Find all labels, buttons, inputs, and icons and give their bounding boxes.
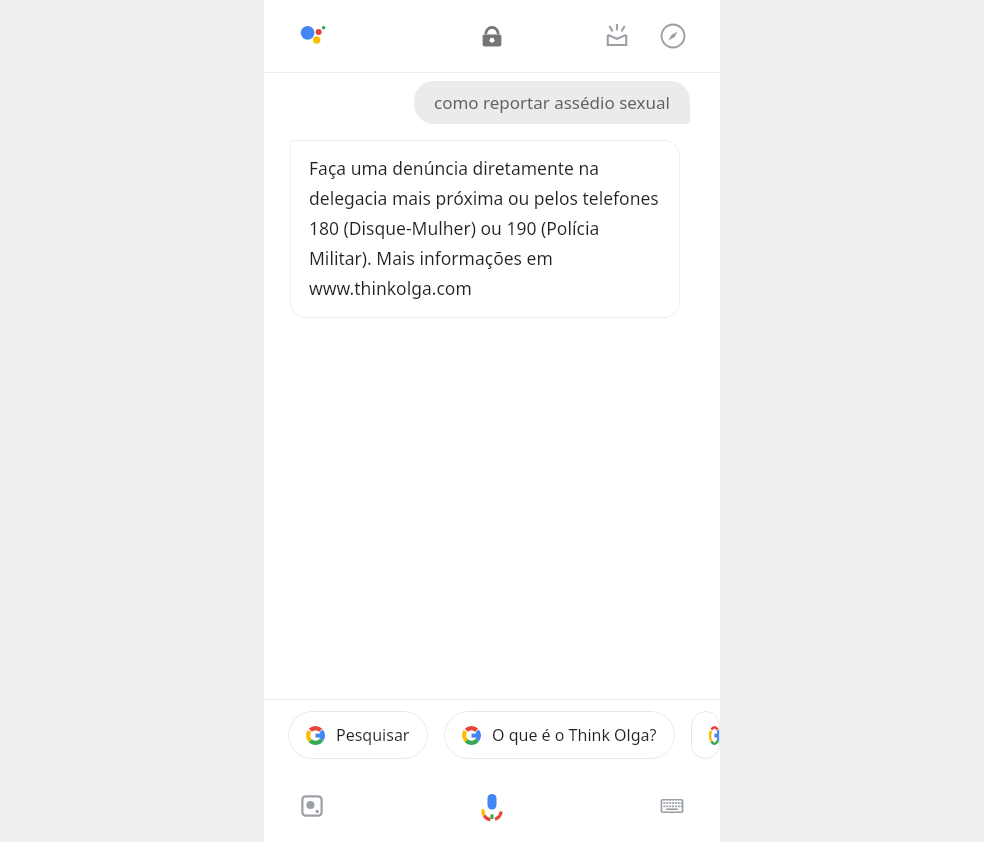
staticText: Pesquisar [336, 724, 410, 746]
button[interactable]: More suggestions [691, 711, 720, 759]
staticText: como reportar assédio sexual [434, 91, 670, 114]
button[interactable]: Assistant [292, 14, 336, 58]
button[interactable]: Privacy lock [469, 13, 515, 59]
button[interactable]: Snapshot [594, 13, 640, 59]
button[interactable]: O que é o Think Olga? [444, 711, 675, 759]
button[interactable]: Faça uma denúncia diretamente na delegac… [290, 140, 680, 318]
staticText: Faça uma denúncia diretamente na delegac… [309, 156, 664, 300]
button[interactable]: Voice search [466, 780, 518, 832]
button[interactable]: Explore [650, 13, 696, 59]
button[interactable]: Pesquisar [288, 711, 428, 759]
button[interactable]: como reportar assédio sexual [414, 81, 690, 124]
button[interactable]: Google Lens [288, 782, 336, 830]
button[interactable]: Keyboard [648, 782, 696, 830]
staticText: O que é o Think Olga? [492, 724, 657, 746]
